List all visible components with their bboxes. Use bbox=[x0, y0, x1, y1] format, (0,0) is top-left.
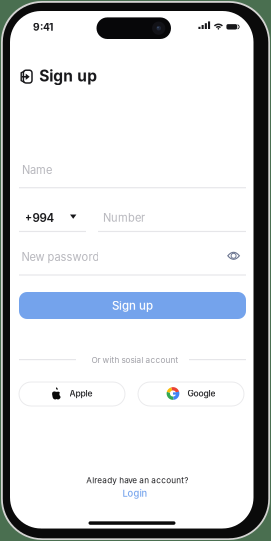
staticText: Already have an account? bbox=[86, 475, 188, 485]
button[interactable]: Show password bbox=[222, 244, 246, 268]
staticText: Name bbox=[22, 163, 52, 177]
button[interactable]: Apple bbox=[19, 382, 125, 406]
button[interactable]: Sign up bbox=[19, 292, 246, 319]
staticText: New password bbox=[21, 250, 99, 264]
staticText: Sign up bbox=[39, 66, 97, 85]
staticText: 9:41 bbox=[33, 21, 53, 33]
staticText: Google bbox=[187, 388, 215, 399]
button[interactable]: Google bbox=[138, 382, 244, 406]
button[interactable]: Login bbox=[116, 486, 154, 500]
staticText: +994 bbox=[24, 211, 54, 225]
staticText: Number bbox=[103, 211, 145, 224]
staticText: Sign up bbox=[112, 299, 153, 312]
staticText: Or with sosial account bbox=[92, 355, 179, 365]
staticText: Login bbox=[122, 488, 147, 499]
staticText: Apple bbox=[70, 388, 93, 399]
